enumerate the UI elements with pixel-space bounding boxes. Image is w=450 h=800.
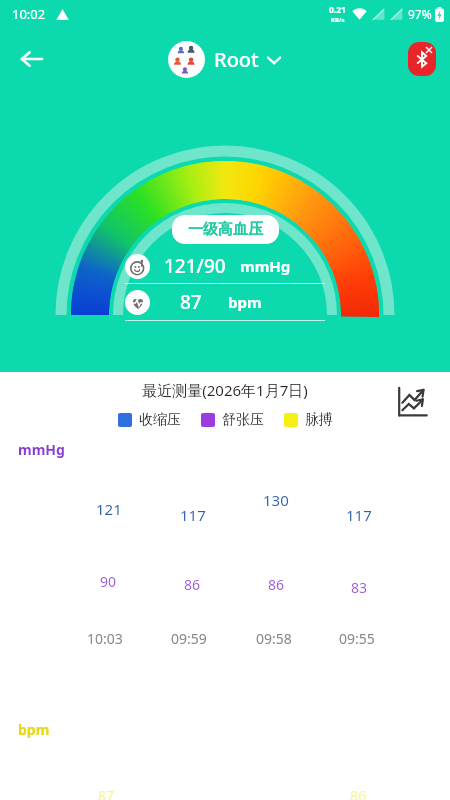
staticText: 10:03 [87, 629, 123, 648]
staticText: 87 [180, 289, 202, 315]
staticText: 86 [350, 786, 367, 800]
staticText: 舒张压 [222, 411, 264, 429]
staticText: 收缩压 [139, 411, 181, 429]
staticText: 121/90 [164, 253, 226, 279]
staticText: 130 [263, 490, 289, 510]
button[interactable]: 一级高血压 [172, 215, 279, 244]
staticText: mmHg [18, 440, 65, 459]
staticText: bpm [18, 720, 50, 739]
button[interactable]: 脉搏 [282, 409, 335, 431]
staticText: 86 [184, 575, 201, 594]
staticText: 10:02 [12, 5, 46, 23]
staticText: 09:58 [256, 629, 292, 648]
button[interactable]: Back [10, 37, 54, 81]
staticText: 83 [351, 578, 368, 597]
staticText: 87 [98, 786, 115, 800]
button[interactable]: Bluetooth disconnected [408, 42, 436, 76]
staticText: 117 [180, 505, 206, 525]
staticText: 0.21 [329, 4, 346, 16]
button[interactable]: Root [162, 37, 288, 82]
button[interactable]: 舒张压 [199, 409, 266, 431]
staticText: 09:59 [171, 629, 207, 648]
staticText: KB/s [331, 16, 345, 24]
staticText: 117 [346, 505, 372, 525]
staticText: 09:55 [339, 629, 375, 648]
staticText: Root [214, 46, 259, 73]
staticText: 121 [96, 499, 122, 519]
staticText: 最近测量(2026年1月7日) [142, 380, 308, 400]
staticText: mmHg [240, 256, 291, 276]
staticText: 90 [100, 572, 117, 591]
staticText: 97% [408, 6, 432, 22]
staticText: 脉搏 [305, 411, 333, 429]
staticText: 86 [268, 575, 285, 594]
button[interactable]: History chart [390, 380, 434, 424]
staticText: bpm [228, 292, 262, 312]
button[interactable]: 收缩压 [116, 409, 183, 431]
staticText: 一级高血压 [188, 220, 263, 239]
